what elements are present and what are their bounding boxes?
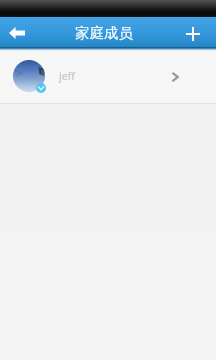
button[interactable]: Back bbox=[0, 17, 33, 47]
staticText: 家庭成员 bbox=[75, 24, 133, 42]
button[interactable]: Add member bbox=[171, 17, 216, 47]
button[interactable]: jeff bbox=[0, 50, 216, 103]
staticText: jeff bbox=[59, 69, 75, 83]
